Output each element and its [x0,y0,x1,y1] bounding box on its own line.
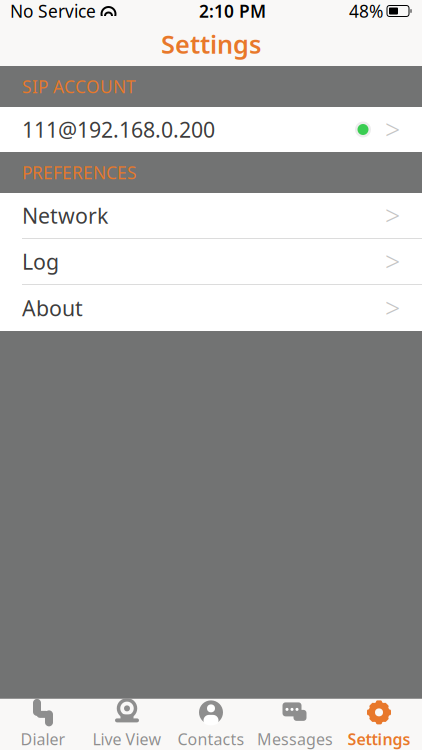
button[interactable]: Network [0,193,422,239]
staticText: Settings [347,728,410,750]
staticText: > [385,244,400,279]
staticText: Log [22,247,59,276]
button[interactable]: About [0,285,422,331]
staticText: No Service [10,0,96,22]
staticText: SIP ACCOUNT [22,75,136,98]
button[interactable]: Settings [337,699,421,749]
staticText: PREFERENCES [22,161,137,184]
staticText: 48% [349,0,383,22]
button[interactable]: Contacts [169,699,253,749]
staticText: About [22,294,83,322]
button[interactable]: Live View [85,699,169,749]
button[interactable]: Messages [253,699,337,749]
button[interactable]: Dialer [1,699,85,749]
staticText: > [385,112,400,147]
staticText: 111@192.168.0.200 [22,115,215,144]
staticText: Settings [161,27,261,61]
staticText: Live View [92,728,161,750]
staticText: Messages [257,728,333,750]
button[interactable]: 111@192.168.0.200 [0,107,422,152]
staticText: Contacts [177,728,244,750]
staticText: 2:10 PM [199,0,266,22]
staticText: Network [22,201,108,230]
staticText: > [385,290,400,326]
staticText: Dialer [20,728,65,750]
button[interactable]: Log [0,239,422,285]
staticText: > [385,198,400,233]
